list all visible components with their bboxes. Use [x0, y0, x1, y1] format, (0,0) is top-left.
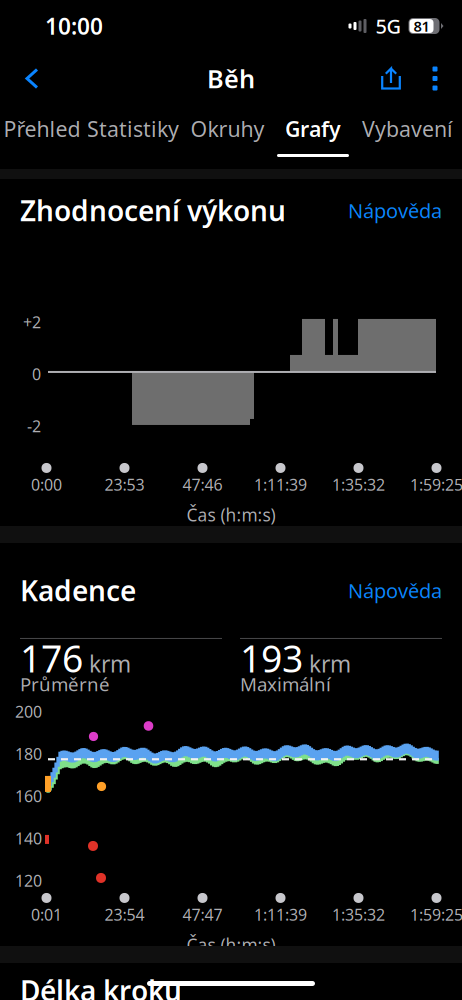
button[interactable]: More options	[414, 55, 456, 101]
staticText: 0:01	[31, 904, 62, 925]
button[interactable]: Nápověda	[348, 577, 442, 604]
staticText: Nápověda	[348, 197, 442, 224]
staticText: 23:53	[104, 474, 144, 495]
button[interactable]: Přehled	[0, 111, 84, 163]
staticText: -2	[27, 415, 41, 436]
staticText: 193	[240, 633, 303, 683]
staticText: Kadence	[20, 572, 136, 609]
button[interactable]: Grafy	[273, 111, 353, 163]
staticText: krm	[89, 649, 131, 679]
staticText: Maximální	[240, 672, 331, 696]
staticText: 160	[15, 785, 42, 806]
staticText: 5G	[375, 13, 401, 39]
button[interactable]: Nápověda	[348, 197, 442, 224]
staticText: 140	[15, 828, 42, 849]
staticText: Zhodnocení výkonu	[20, 192, 286, 229]
staticText: 176	[20, 633, 83, 683]
staticText: +2	[23, 311, 41, 332]
staticText: 10:00	[45, 11, 103, 41]
staticText: 1:35:32	[332, 904, 385, 925]
staticText: Čas (h:m:s)	[186, 503, 275, 526]
button[interactable]: Statistiky	[84, 111, 182, 163]
staticText: Délka kroku	[20, 972, 182, 1000]
staticText: 200	[15, 701, 42, 722]
staticText: Nápověda	[348, 577, 442, 604]
staticText: 0:00	[31, 474, 62, 495]
staticText: 47:46	[182, 474, 222, 495]
staticText: 81	[413, 16, 429, 36]
staticText: 1:11:39	[254, 904, 307, 925]
staticText: Grafy	[285, 115, 341, 143]
button[interactable]: Vybavení	[353, 111, 462, 163]
staticText: Čas (h:m:s)	[186, 933, 275, 956]
button[interactable]: Back	[6, 55, 58, 101]
staticText: Okruhy	[190, 115, 264, 143]
staticText: 1:35:32	[332, 474, 385, 495]
staticText: 1:59:25	[410, 904, 462, 925]
staticText: 1:11:39	[254, 474, 307, 495]
staticText: 120	[15, 870, 42, 891]
staticText: Běh	[207, 62, 255, 95]
staticText: Statistiky	[87, 115, 179, 143]
button[interactable]: Okruhy	[182, 111, 273, 163]
staticText: 47:47	[182, 904, 222, 925]
staticText: Vybavení	[362, 115, 453, 143]
staticText: krm	[309, 649, 351, 679]
staticText: 0	[32, 363, 41, 384]
button[interactable]: Share	[368, 55, 414, 101]
staticText: 23:54	[104, 904, 144, 925]
staticText: 1:59:25	[410, 474, 462, 495]
staticText: 180	[15, 743, 42, 764]
staticText: Průměrné	[20, 672, 110, 696]
staticText: Přehled	[3, 115, 80, 143]
